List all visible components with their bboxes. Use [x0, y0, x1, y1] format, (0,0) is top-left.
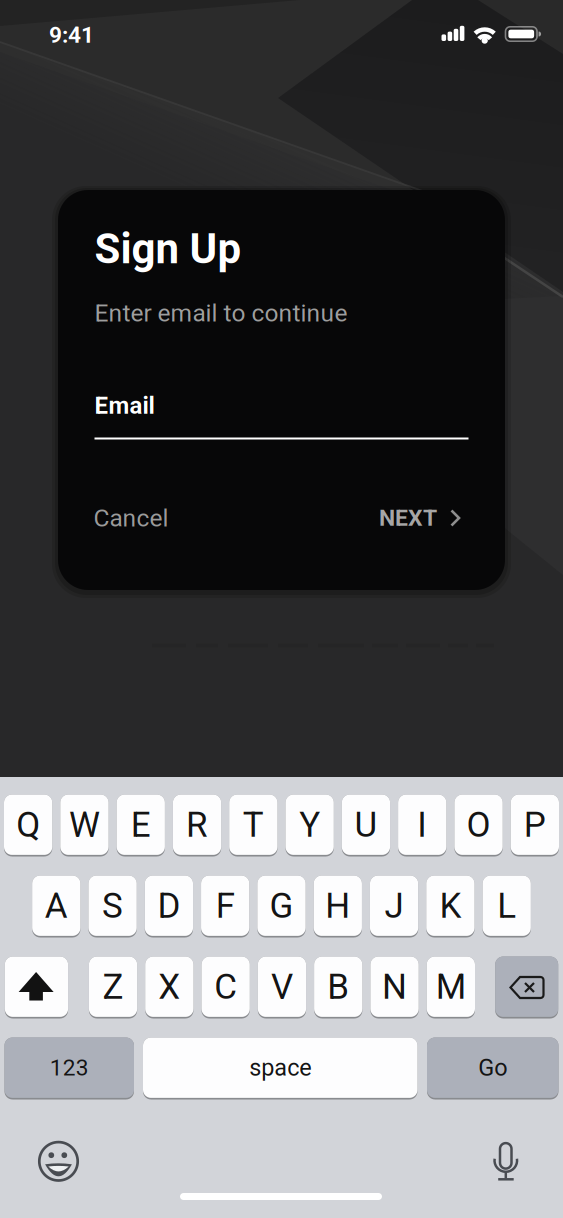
button[interactable]: Z [89, 956, 137, 1018]
button[interactable]: M [427, 956, 475, 1018]
button[interactable]: E [117, 794, 165, 856]
staticText: NEXT [379, 505, 437, 531]
staticText: C [214, 966, 237, 1007]
staticText: P [524, 804, 546, 845]
button[interactable]: V [258, 956, 306, 1018]
button[interactable]: G [257, 875, 306, 937]
button[interactable]: O [454, 794, 503, 856]
button[interactable]: T [229, 794, 277, 856]
staticText: Q [16, 804, 40, 845]
button[interactable]: F [201, 875, 249, 937]
staticText: 123 [50, 1054, 89, 1081]
staticText: Z [102, 966, 123, 1007]
staticText: W [69, 804, 100, 845]
staticText: Sign Up [94, 224, 241, 274]
button[interactable]: J [370, 875, 418, 937]
staticText: K [439, 885, 461, 926]
staticText: Email [94, 391, 154, 419]
button[interactable]: L [483, 875, 531, 937]
button[interactable]: D [145, 875, 193, 937]
staticText: V [271, 966, 293, 1007]
staticText: G [269, 885, 293, 926]
button[interactable]: Delete [495, 956, 558, 1018]
staticText: L [497, 885, 516, 926]
staticText: F [216, 885, 235, 926]
button[interactable]: S [88, 875, 137, 937]
staticText: I [417, 804, 427, 845]
button[interactable]: H [314, 875, 362, 937]
staticText: O [467, 804, 491, 845]
staticText: E [131, 804, 151, 845]
button[interactable]: Shift [5, 956, 68, 1018]
staticText: H [325, 885, 350, 926]
staticText: D [157, 885, 180, 926]
staticText: X [158, 966, 180, 1007]
button[interactable]: Emoji [30, 1133, 86, 1189]
staticText: 9:41 [49, 22, 94, 48]
button[interactable]: Q [4, 794, 52, 856]
button[interactable]: K [426, 875, 474, 937]
staticText: R [186, 804, 208, 845]
button[interactable]: I [398, 794, 446, 856]
button[interactable]: X [145, 956, 193, 1018]
button[interactable]: A [32, 875, 80, 937]
button[interactable]: N [370, 956, 419, 1018]
staticText: space [249, 1054, 311, 1081]
staticText: Enter email to continue [94, 299, 347, 327]
staticText: M [436, 966, 466, 1007]
staticText: Go [478, 1054, 507, 1081]
staticText: N [382, 966, 407, 1007]
staticText: U [354, 804, 377, 845]
button[interactable]: W [60, 794, 109, 856]
button[interactable]: B [314, 956, 362, 1018]
button[interactable]: space [143, 1037, 417, 1099]
button[interactable]: Dictate [478, 1132, 534, 1188]
button[interactable]: 123 [4, 1037, 134, 1099]
button[interactable]: NEXT [363, 495, 460, 541]
button[interactable]: Cancel [93, 494, 188, 542]
button[interactable]: P [511, 794, 559, 856]
button[interactable]: U [342, 794, 390, 856]
button[interactable]: Go [427, 1037, 558, 1099]
staticText: Y [299, 804, 320, 845]
staticText: Cancel [93, 504, 168, 532]
button[interactable]: Y [285, 794, 334, 856]
staticText: J [385, 885, 404, 926]
button[interactable]: R [173, 794, 221, 856]
staticText: A [45, 885, 68, 926]
staticText: B [327, 966, 349, 1007]
staticText: T [243, 804, 264, 845]
staticText: S [102, 885, 123, 926]
button[interactable]: C [201, 956, 250, 1018]
